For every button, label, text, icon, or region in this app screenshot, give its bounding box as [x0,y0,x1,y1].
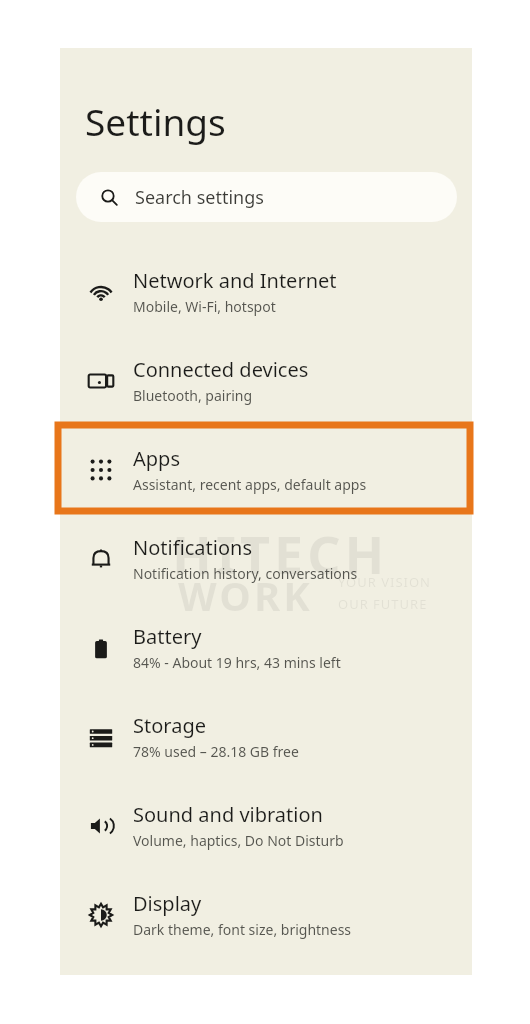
staticText: 78% used – 28.18 GB free [133,742,299,761]
staticText: HITECH [172,518,389,589]
staticText: Notification history, conversations [133,564,358,583]
staticText: Notifications [133,534,252,561]
staticText: OUR FUTURE [338,595,428,613]
staticText: Display [133,890,202,917]
button[interactable]: Search settings [76,172,457,222]
staticText: Battery [133,623,202,650]
staticText: Storage [133,712,206,739]
staticText: Bluetooth, pairing [133,386,253,405]
staticText: Dark theme, font size, brightness [133,920,352,939]
button[interactable]: Network and Internet [60,247,472,336]
staticText: YOUR VISION [338,573,432,591]
button[interactable]: Storage [60,692,472,781]
staticText: Network and Internet [133,267,337,294]
staticText: Apps [133,445,180,472]
staticText: Assistant, recent apps, default apps [133,475,367,494]
staticText: Connected devices [133,356,309,383]
staticText: Settings [85,96,226,146]
staticText: Mobile, Wi-Fi, hotspot [133,297,276,316]
button[interactable]: Display [60,870,472,959]
staticText: Sound and vibration [133,801,323,828]
staticText: Search settings [135,185,264,210]
staticText: 84% - About 19 hrs, 43 mins left [133,653,341,672]
button[interactable]: Apps [60,425,472,514]
staticText: Volume, haptics, Do Not Disturb [133,831,344,850]
button[interactable]: Notifications [60,514,472,603]
button[interactable]: Connected devices [60,336,472,425]
button[interactable]: Sound and vibration [60,781,472,870]
staticText: WORK [178,568,313,622]
button[interactable]: Battery [60,603,472,692]
